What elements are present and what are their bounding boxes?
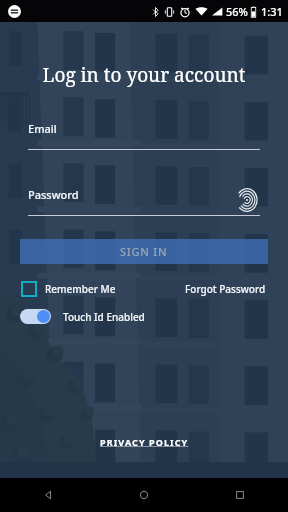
button[interactable]: Home: [96, 478, 192, 512]
button[interactable]: Fingerprint login: [234, 187, 260, 213]
staticText: Forgot Password: [185, 282, 266, 296]
staticText: 56%: [226, 4, 248, 19]
button[interactable]: Recent apps: [192, 478, 288, 512]
button[interactable]: Back: [0, 478, 96, 512]
staticText: PRIVACY POLICY: [100, 436, 189, 448]
staticText: SIGN IN: [120, 244, 168, 259]
staticText: Touch Id Enabled: [63, 310, 145, 324]
staticText: Email: [28, 121, 57, 136]
button[interactable]: Touch Id Enabled: [20, 307, 145, 326]
button[interactable]: Forgot Password: [185, 282, 266, 296]
staticText: Log in to your account: [16, 62, 272, 88]
button[interactable]: PRIVACY POLICY: [96, 432, 193, 452]
staticText: Password: [28, 187, 79, 202]
button[interactable]: SIGN IN: [20, 239, 268, 264]
button[interactable]: Remember Me: [22, 282, 120, 296]
staticText: 1:31: [261, 4, 283, 19]
staticText: Remember Me: [45, 282, 116, 296]
